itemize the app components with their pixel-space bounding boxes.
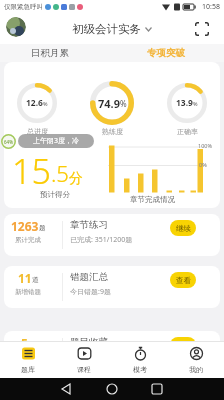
staticText: 新增收藏	[15, 353, 41, 361]
staticText: 新增错题	[15, 288, 41, 296]
staticText: 100%	[198, 142, 213, 149]
button[interactable]: 上午阴3度，冷	[18, 134, 94, 148]
button[interactable]: 日积月累	[26, 44, 74, 62]
staticText: 1263	[11, 218, 39, 232]
staticText: 日积月累	[31, 47, 69, 59]
staticText: 64%	[4, 139, 13, 145]
staticText: 查看	[176, 341, 191, 350]
staticText: 课程	[77, 365, 91, 374]
button[interactable]	[4, 331, 220, 373]
button[interactable]: 查看	[170, 272, 196, 288]
button[interactable]	[4, 214, 220, 256]
staticText: 初级会计实务	[72, 22, 141, 36]
staticText: 5	[21, 335, 28, 349]
staticText: %	[43, 100, 48, 107]
staticText: 查看	[176, 276, 191, 285]
staticText: 15	[12, 148, 51, 188]
staticText: %	[120, 98, 127, 109]
button[interactable]: 题库	[0, 342, 56, 378]
staticText: 今日收藏:0题	[70, 352, 111, 362]
button[interactable]: 继续	[170, 220, 196, 236]
staticText: 上午阴3度，冷	[33, 136, 80, 146]
staticText: 74.9	[98, 96, 120, 111]
button[interactable]	[6, 17, 26, 37]
staticText: 已完成: 351/1200题	[70, 235, 133, 245]
staticText: 预计得分	[40, 190, 70, 199]
staticText: 11	[18, 270, 32, 284]
staticText: 模考	[133, 365, 147, 374]
staticText: 仅限紧急呼叫	[4, 3, 43, 11]
staticText: 题	[39, 224, 46, 232]
staticText: 我的	[189, 365, 203, 374]
staticText: 0%	[199, 161, 207, 168]
staticText: 错题汇总	[70, 271, 108, 283]
staticText: 分	[69, 170, 83, 188]
button[interactable]	[4, 266, 220, 308]
button[interactable]: 我的	[168, 342, 224, 378]
staticText: 累计完成	[15, 236, 41, 244]
button[interactable]: 专项突破	[142, 44, 190, 62]
staticText: 题库	[21, 365, 35, 374]
staticText: %	[193, 100, 198, 107]
staticText: 题目收藏	[70, 336, 108, 348]
staticText: 13.9	[176, 97, 193, 109]
button[interactable]: 模考	[112, 342, 168, 378]
staticText: 章节练习	[70, 219, 108, 231]
staticText: 12.6	[26, 97, 43, 109]
staticText: 总进度	[27, 127, 48, 136]
button[interactable]: 查看	[170, 337, 196, 353]
staticText: 熟练度	[102, 127, 123, 136]
staticText: .5	[51, 158, 69, 188]
staticText: 道	[28, 341, 35, 349]
button[interactable]	[195, 22, 209, 36]
button[interactable]: 初级会计实务	[62, 14, 162, 44]
button[interactable]: 课程	[56, 342, 112, 378]
staticText: 章节完成情况	[130, 195, 175, 204]
staticText: 今日错题:9题	[70, 287, 111, 297]
staticText: 专项突破	[147, 47, 185, 59]
staticText: 正确率	[177, 127, 198, 136]
staticText: 道	[32, 276, 39, 284]
staticText: 继续	[176, 224, 191, 233]
staticText: 10:58	[202, 2, 220, 12]
